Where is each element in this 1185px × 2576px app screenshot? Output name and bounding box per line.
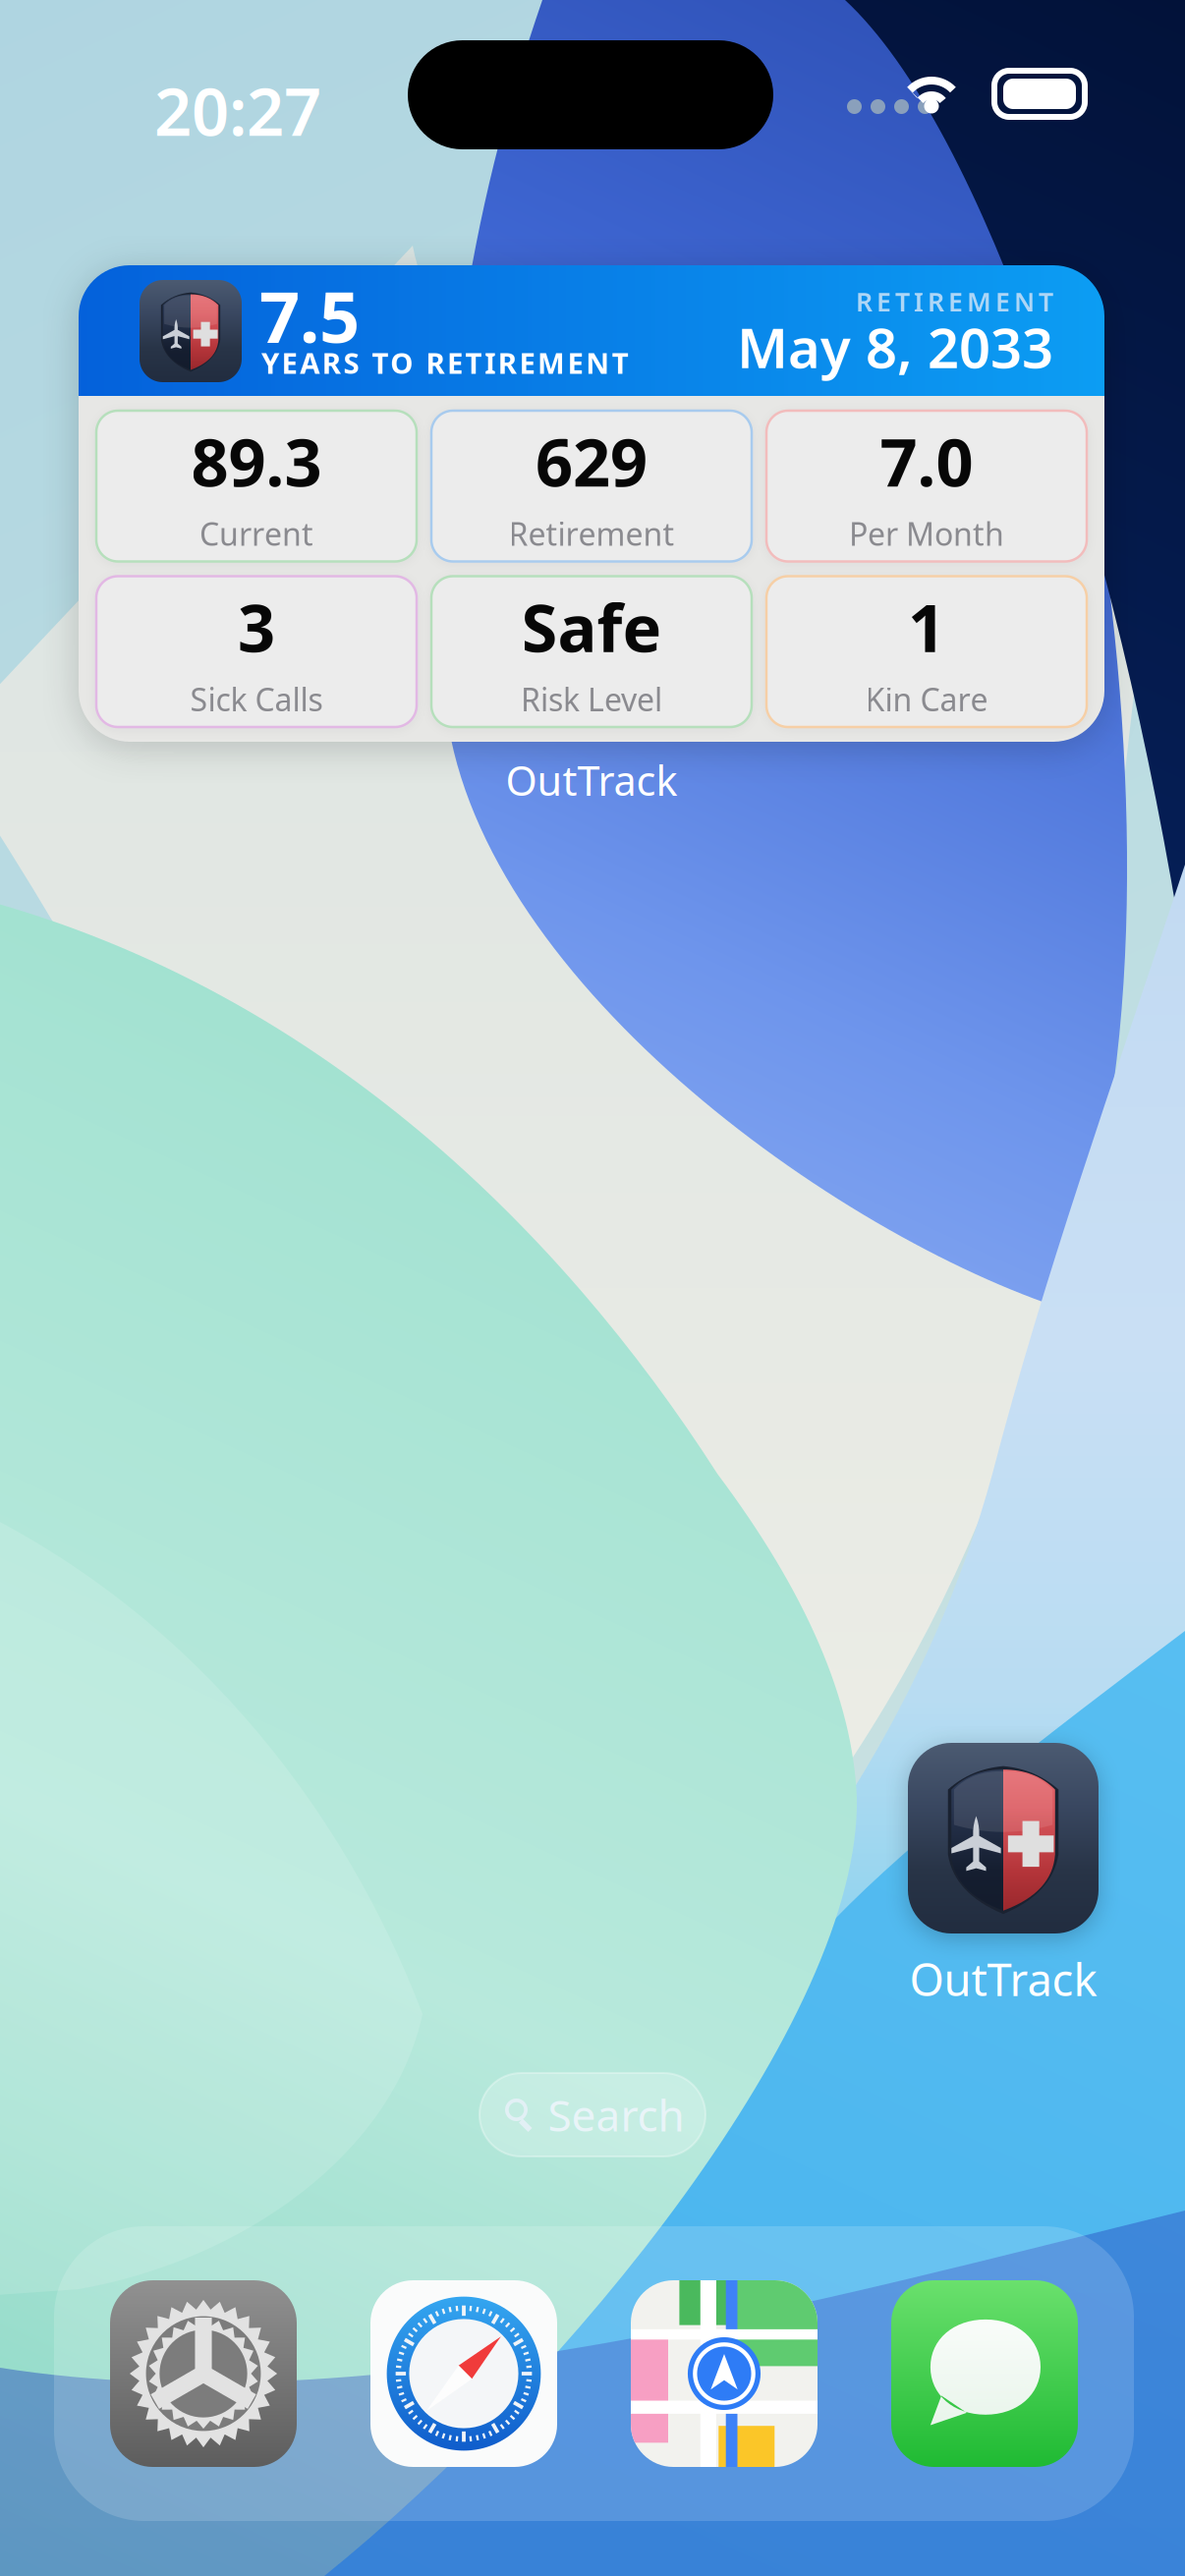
button[interactable]: Maps	[631, 2280, 818, 2467]
staticText: 20:27	[154, 67, 321, 154]
staticText: 7.0	[880, 418, 973, 505]
staticText: Safe	[521, 583, 662, 670]
staticText: 3	[238, 583, 275, 670]
staticText: Retirement	[508, 513, 675, 554]
staticText: 1	[908, 583, 945, 670]
staticText: Risk Level	[521, 678, 662, 720]
staticText: Current	[199, 513, 313, 554]
button[interactable]: Settings	[110, 2280, 297, 2467]
staticText: OutTrack	[909, 1949, 1097, 2008]
staticText: Per Month	[849, 513, 1004, 554]
button[interactable]: Safari	[370, 2280, 557, 2467]
staticText: RETIREMENT	[856, 284, 1053, 319]
staticText: 7.5	[259, 268, 360, 362]
staticText: May 8, 2033	[737, 310, 1053, 383]
button[interactable]: Messages	[891, 2280, 1078, 2467]
button[interactable]: Search	[480, 2073, 705, 2156]
staticText: Search	[548, 2086, 684, 2143]
staticText: 629	[536, 418, 648, 505]
button[interactable]: OutTrack	[908, 1743, 1099, 2008]
staticText: OutTrack	[506, 753, 677, 807]
staticText: 89.3	[191, 418, 322, 505]
staticText: Kin Care	[865, 678, 988, 720]
button[interactable]: 7.5	[79, 265, 1104, 742]
staticText: YEARS TO RETIREMENT	[261, 343, 629, 382]
staticText: Sick Calls	[190, 678, 323, 720]
